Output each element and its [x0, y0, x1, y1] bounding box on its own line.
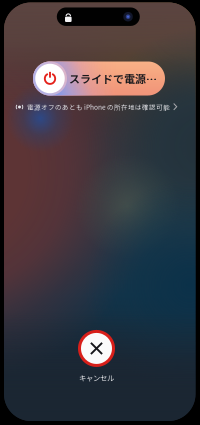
staticText: スライドで電源オフ	[69, 71, 165, 86]
button[interactable]: キャンセル	[78, 330, 115, 383]
staticText: 電源オフのあとも iPhone の所在地は確認可能	[27, 102, 170, 112]
button[interactable]: スライドで電源オフ	[33, 61, 165, 95]
staticText: キャンセル	[79, 372, 114, 383]
button[interactable]: 電源オフのあとも iPhone の所在地は確認可能	[14, 102, 178, 112]
